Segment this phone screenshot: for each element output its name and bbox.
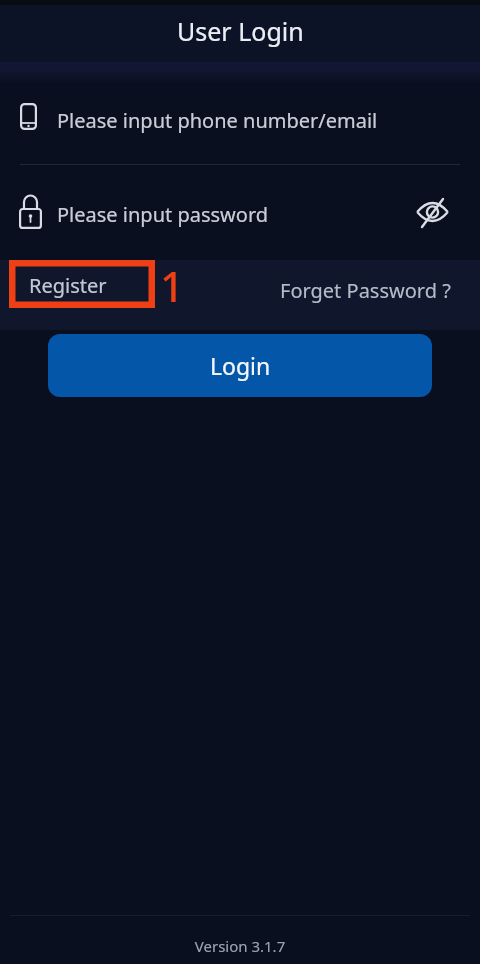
staticText: 1 <box>160 257 185 314</box>
button[interactable]: Register <box>12 266 144 304</box>
button[interactable]: Login <box>48 334 432 397</box>
staticText: Please input phone number/email <box>57 107 378 134</box>
button[interactable] <box>416 199 449 229</box>
staticText: Please input password <box>57 201 269 228</box>
button[interactable]: Forget Password ? <box>280 277 451 304</box>
button[interactable]: Please input password <box>0 182 480 258</box>
staticText: User Login <box>177 14 304 48</box>
staticText: Login <box>210 350 271 381</box>
button[interactable]: Please input phone number/email <box>0 88 480 164</box>
staticText: Version 3.1.7 <box>0 936 480 956</box>
staticText: Register <box>29 272 107 299</box>
